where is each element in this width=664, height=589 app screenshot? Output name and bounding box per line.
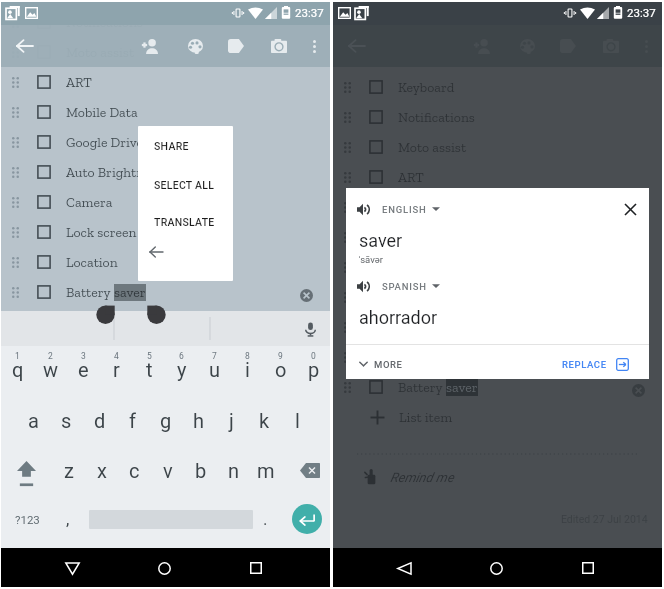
button[interactable]: Auto Brightness [1,157,330,187]
button[interactable]: Mobile Data [333,192,662,222]
staticText: ?123 [15,513,40,526]
button[interactable]: Label [223,33,249,59]
button[interactable]: z [52,447,85,493]
button[interactable]: b [184,447,217,493]
button[interactable]: 7 [198,346,231,392]
button[interactable]: Change colour [182,33,208,59]
button[interactable]: ART [333,162,662,192]
button[interactable]: a [17,397,50,443]
button[interactable]: Mobile Data [1,97,330,127]
button[interactable]: Back [143,239,169,265]
button[interactable]: Camera [266,33,292,59]
staticText: ˈsāvər [359,254,383,265]
button[interactable]: Camera [333,282,662,312]
button[interactable]: 8 [231,346,264,392]
button[interactable]: Notifications [1,7,330,37]
button[interactable]: c [118,447,151,493]
button[interactable]: , [55,497,81,541]
button[interactable]: Enter [292,504,322,534]
button[interactable]: Remove item [295,284,317,306]
button[interactable]: j [215,397,248,443]
button[interactable]: TRANSLATE [138,207,233,237]
staticText: d [94,409,106,432]
button[interactable]: Back [344,33,370,59]
button[interactable]: SHARE [138,131,233,161]
button[interactable]: 2 [34,346,67,392]
staticText: ENGLISH [382,204,427,215]
button[interactable]: Close [617,196,643,222]
button[interactable]: Google Now [333,12,662,42]
button[interactable]: Remove item [627,379,649,401]
button[interactable]: Moto assist [1,37,330,67]
button[interactable]: x [85,447,118,493]
button[interactable]: Change colour [514,33,540,59]
button[interactable]: 5 [133,346,166,392]
button[interactable]: Keyboard [333,72,662,102]
button[interactable]: . [252,497,278,541]
button[interactable]: Label [555,33,581,59]
button[interactable]: d [83,397,116,443]
button[interactable]: Back [12,33,38,59]
button[interactable]: Battery [333,372,662,402]
button[interactable]: Add collaborator [137,33,163,59]
button[interactable]: Location [1,247,330,277]
button[interactable]: Location [333,342,662,372]
staticText: Keyboard [398,79,455,96]
button[interactable]: m [249,447,282,493]
staticText: z [64,459,74,482]
button[interactable]: 4 [100,346,133,392]
staticText: TRANSLATE [154,216,215,228]
button[interactable]: 6 [165,346,198,392]
button[interactable]: Recent apps [577,557,599,579]
button[interactable]: SMS apps [333,42,662,72]
button[interactable]: More options [301,33,327,59]
button[interactable]: Backspace [292,447,327,493]
button[interactable]: REPLACE [562,353,629,375]
button[interactable]: Back [61,557,83,579]
button[interactable]: List item [333,402,662,432]
button[interactable]: Moto assist [333,132,662,162]
button[interactable]: SPANISH [357,273,440,299]
button[interactable]: Camera [598,33,624,59]
button[interactable]: 0 [297,346,330,392]
button[interactable]: g [149,397,182,443]
button[interactable]: Google Drive [333,222,662,252]
button[interactable]: 3 [67,346,100,392]
button[interactable]: Camera [1,187,330,217]
button[interactable]: ENGLISH [357,196,440,222]
button[interactable]: Lock screen [1,217,330,247]
button[interactable]: 9 [264,346,297,392]
button[interactable]: Add collaborator [469,33,495,59]
button[interactable]: Home [485,557,507,579]
button[interactable]: s [50,397,83,443]
button[interactable]: Notifications [333,102,662,132]
staticText: 6 [179,351,184,361]
button[interactable]: Back [393,557,415,579]
staticText: q [12,358,24,381]
button[interactable]: Auto Brightness [333,252,662,282]
staticText: j [229,409,234,432]
staticText: , [66,509,70,529]
button[interactable]: MORE [359,353,403,375]
button[interactable]: Voice input [300,319,320,339]
button[interactable]: v [151,447,184,493]
button[interactable]: Battery [1,277,330,307]
button[interactable]: n [217,447,250,493]
button[interactable]: SELECT ALL [138,170,233,200]
button[interactable]: 1 [1,346,34,392]
button[interactable]: k [248,397,281,443]
button[interactable]: Shift [17,461,36,488]
button[interactable]: Remind me [333,455,662,499]
button[interactable]: ?123 [1,497,53,541]
button[interactable]: f [116,397,149,443]
button[interactable]: l [281,397,314,443]
button[interactable]: Lock screen [333,312,662,342]
button[interactable]: Home [153,557,175,579]
button[interactable]: ART [1,67,330,97]
button[interactable]: Recent apps [245,557,267,579]
button[interactable]: Google Drive [1,127,330,157]
button[interactable]: h [182,397,215,443]
